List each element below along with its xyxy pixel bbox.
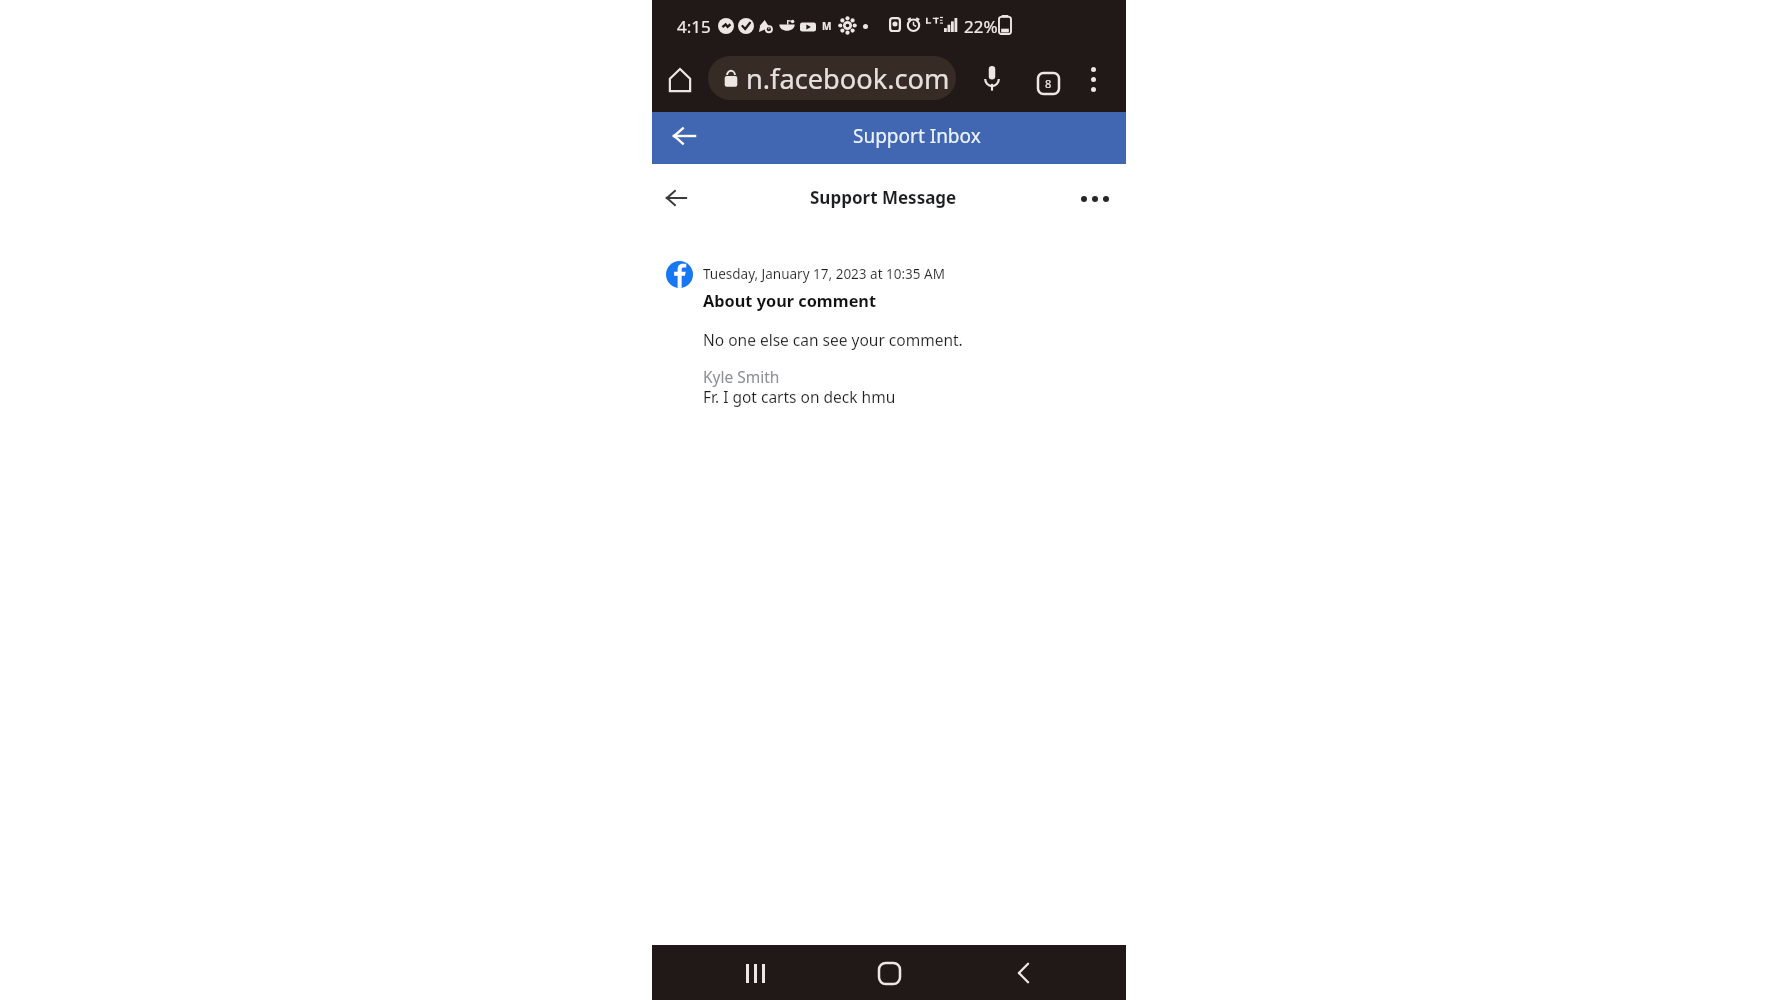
staticText: Fr. I got carts on deck hmu xyxy=(703,386,896,407)
staticText: M xyxy=(822,19,832,33)
button[interactable]: Switch tabs, 8 open xyxy=(1029,64,1067,102)
button[interactable]: Tuesday, January 17, 2023 at 10:35 AM xyxy=(652,246,1126,416)
staticText: 4:15 xyxy=(677,15,711,38)
button[interactable]: Home page xyxy=(662,62,698,98)
staticText: About your comment xyxy=(703,290,877,312)
button[interactable]: Back xyxy=(668,120,700,152)
button[interactable]: More options xyxy=(1074,60,1112,98)
button[interactable]: n.facebook.com xyxy=(708,56,956,100)
button[interactable]: More options xyxy=(1073,177,1117,221)
button[interactable]: Voice search xyxy=(973,59,1011,97)
staticText: 22% xyxy=(964,15,998,38)
staticText: Support Message xyxy=(810,186,957,209)
button[interactable]: Home xyxy=(868,952,910,994)
button[interactable]: Back xyxy=(1002,952,1044,994)
button[interactable]: Recent apps xyxy=(734,952,776,994)
staticText: 8 xyxy=(1045,76,1052,91)
staticText: Tuesday, January 17, 2023 at 10:35 AM xyxy=(703,265,945,283)
staticText: Kyle Smith xyxy=(703,366,780,387)
button[interactable]: Back xyxy=(655,177,697,219)
staticText: Support Inbox xyxy=(853,123,981,149)
staticText: No one else can see your comment. xyxy=(703,329,963,350)
staticText: n.facebook.com xyxy=(746,60,950,97)
